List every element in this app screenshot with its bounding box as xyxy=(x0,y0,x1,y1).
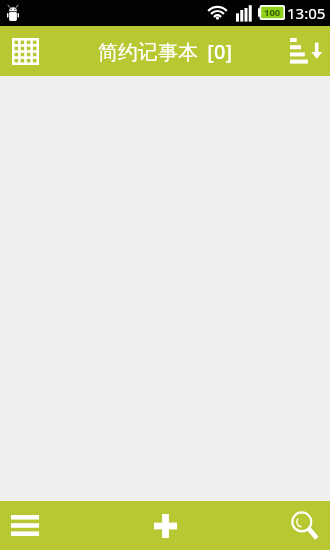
staticText: 简约记事本 [0] xyxy=(98,38,233,65)
button[interactable]: Search xyxy=(280,501,330,550)
button[interactable]: Add note xyxy=(135,501,195,550)
staticText: 13:05 xyxy=(287,3,326,23)
button[interactable]: Grid view xyxy=(0,26,50,76)
button[interactable]: Sort xyxy=(282,26,330,76)
staticText: 100 xyxy=(264,6,281,19)
button[interactable]: Menu xyxy=(0,501,50,550)
